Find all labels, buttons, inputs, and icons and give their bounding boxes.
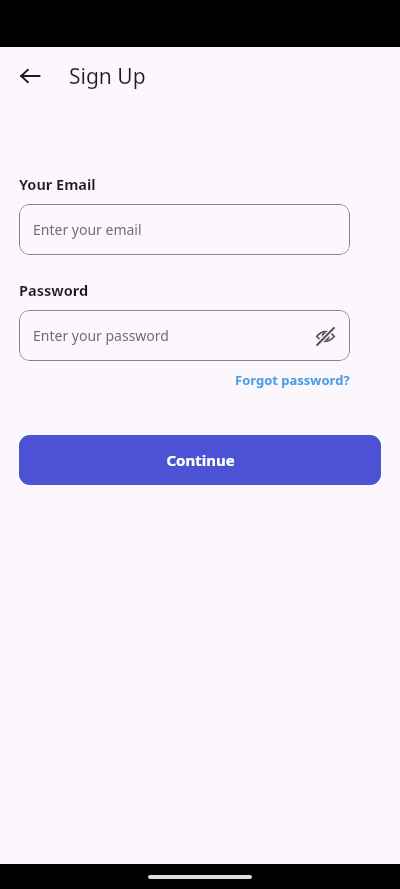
button[interactable]: Forgot password? bbox=[235, 371, 350, 389]
staticText: Enter your email bbox=[33, 220, 142, 239]
button[interactable]: Show password bbox=[308, 319, 342, 353]
staticText: Continue bbox=[166, 450, 235, 470]
staticText: Enter your password bbox=[33, 326, 169, 345]
staticText: Password bbox=[19, 280, 89, 300]
button[interactable]: Back bbox=[12, 58, 48, 94]
staticText: Forgot password? bbox=[235, 371, 350, 389]
button[interactable]: Enter your email bbox=[19, 204, 350, 255]
button[interactable]: Continue bbox=[19, 435, 381, 485]
staticText: Your Email bbox=[19, 174, 96, 194]
staticText: Sign Up bbox=[69, 62, 146, 91]
button[interactable]: Enter your password bbox=[19, 310, 350, 361]
